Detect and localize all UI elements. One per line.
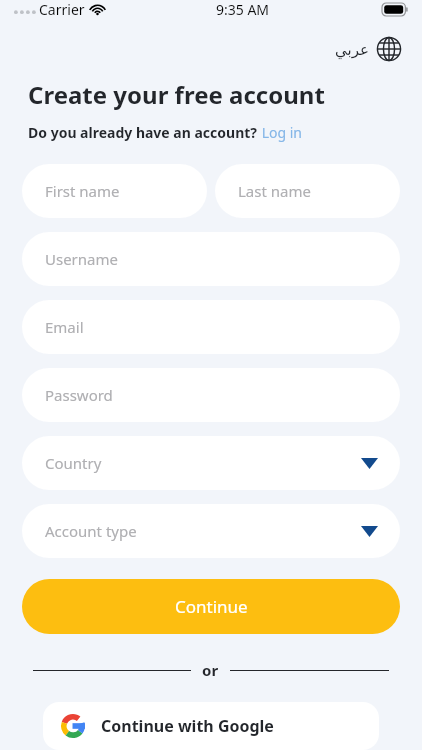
button[interactable]: Switch language to Arabic	[331, 32, 406, 66]
staticText: Do you already have an account?	[28, 123, 258, 142]
staticText: Account type	[45, 521, 137, 541]
staticText: Password	[45, 385, 113, 405]
staticText: Log in	[258, 123, 302, 142]
staticText: or	[202, 660, 219, 680]
button[interactable]: Continue	[22, 579, 400, 634]
staticText: 9:35 AM	[216, 0, 270, 19]
button[interactable]: Country	[22, 436, 400, 490]
button[interactable]: Log in	[258, 123, 302, 142]
button[interactable]: Last name	[215, 164, 400, 218]
button[interactable]: Account type	[22, 504, 400, 558]
button[interactable]: Email	[22, 300, 400, 354]
button[interactable]: First name	[22, 164, 207, 218]
staticText: Continue	[175, 595, 248, 618]
staticText: Last name	[238, 181, 311, 201]
staticText: Email	[45, 317, 84, 337]
button[interactable]: Username	[22, 232, 400, 286]
staticText: Username	[45, 249, 118, 269]
staticText: Create your free account	[28, 78, 325, 111]
staticText: Country	[45, 453, 102, 473]
staticText: Carrier	[39, 0, 85, 19]
button[interactable]: Password	[22, 368, 400, 422]
staticText: Continue with Google	[101, 715, 274, 737]
staticText: عربي	[335, 41, 369, 58]
button[interactable]: Continue with Google	[43, 702, 379, 750]
staticText: First name	[45, 181, 120, 201]
